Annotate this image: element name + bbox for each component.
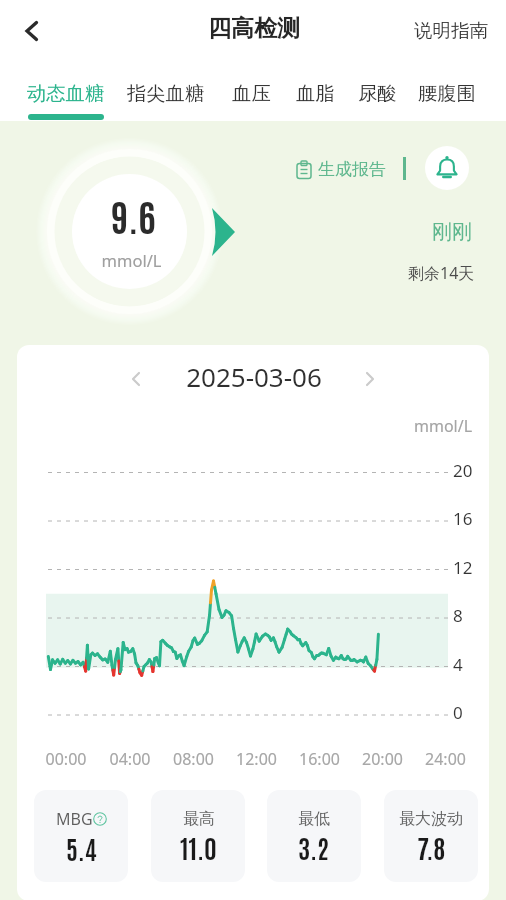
staticText: 3.2 [298, 830, 330, 864]
staticText: 00:00 [34, 748, 98, 770]
staticText: 0 [453, 701, 463, 724]
staticText: mmol/L [414, 415, 473, 437]
staticText: 20:00 [351, 748, 414, 770]
button[interactable]: 血压 [224, 75, 279, 111]
staticText: 刚刚 [432, 220, 472, 245]
staticText: 5.4 [66, 831, 97, 865]
button[interactable]: Previous day [113, 356, 159, 402]
staticText: 指尖血糖 [127, 81, 205, 105]
staticText: 腰腹围 [418, 81, 476, 105]
staticText: 04:00 [98, 748, 162, 770]
button[interactable]: 最高 [151, 790, 245, 882]
staticText: 剩余14天 [408, 262, 475, 284]
staticText: 尿酸 [358, 81, 397, 105]
staticText: 最高 [183, 809, 215, 829]
staticText: 生成报告 [318, 159, 386, 180]
staticText: 24:00 [414, 748, 477, 770]
button[interactable]: 指尖血糖 [119, 75, 213, 111]
staticText: 最大波动 [399, 809, 463, 829]
staticText: 12 [453, 556, 473, 579]
button[interactable]: 动态血糖 [19, 75, 113, 111]
button[interactable]: 血脂 [288, 75, 343, 111]
staticText: mmol/L [49, 249, 214, 271]
staticText: 9.6 [111, 191, 156, 240]
staticText: 11.0 [180, 830, 217, 864]
button[interactable]: Next day [347, 356, 393, 402]
staticText: 8 [453, 604, 463, 627]
button[interactable]: 生成报告 [292, 155, 390, 184]
staticText: 说明指南 [414, 19, 488, 42]
button[interactable]: 腰腹围 [410, 75, 484, 111]
staticText: 12:00 [225, 748, 288, 770]
staticText: 4 [453, 653, 463, 676]
staticText: 血脂 [296, 81, 335, 105]
staticText: 最低 [298, 809, 330, 829]
staticText: MBG [56, 808, 93, 830]
button[interactable]: MBG [34, 790, 128, 882]
staticText: 7.8 [417, 830, 446, 864]
button[interactable]: 最低 [267, 790, 361, 882]
staticText: 动态血糖 [27, 81, 105, 105]
staticText: 08:00 [162, 748, 225, 770]
staticText: 四高检测 [208, 14, 300, 43]
button[interactable]: Notifications [425, 146, 469, 190]
staticText: 2025-03-06 [18, 359, 489, 394]
button[interactable]: 说明指南 [404, 11, 498, 50]
staticText: 16:00 [288, 748, 351, 770]
button[interactable]: 尿酸 [350, 75, 405, 111]
staticText: 20 [453, 459, 473, 482]
staticText: 16 [453, 507, 473, 530]
staticText: 血压 [232, 81, 271, 105]
button[interactable]: 最大波动 [384, 790, 478, 882]
button[interactable]: Back [6, 6, 56, 56]
